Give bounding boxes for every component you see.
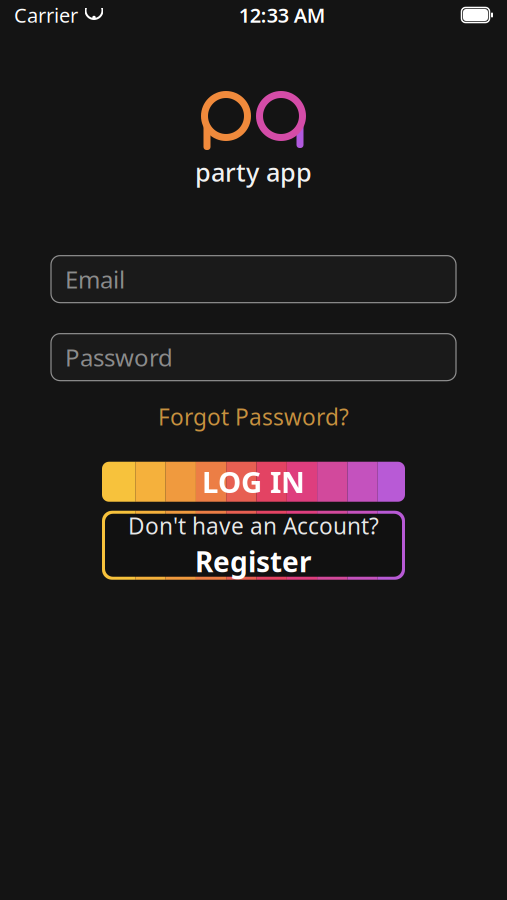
staticText: Password: [65, 341, 173, 373]
button[interactable]: LOG IN: [102, 462, 405, 502]
staticText: Register: [195, 543, 312, 580]
button[interactable]: Forgot Password?: [148, 398, 359, 436]
staticText: 12:33 AM: [239, 2, 326, 28]
staticText: Forgot Password?: [158, 402, 349, 432]
button[interactable]: Email: [51, 256, 456, 303]
staticText: Carrier: [14, 2, 78, 28]
button[interactable]: Password: [51, 334, 456, 381]
button[interactable]: Don't have an Account?: [102, 511, 405, 580]
staticText: Email: [65, 263, 125, 295]
staticText: LOG IN: [202, 462, 305, 501]
staticText: party app: [195, 155, 312, 189]
staticText: Don't have an Account?: [128, 511, 379, 541]
